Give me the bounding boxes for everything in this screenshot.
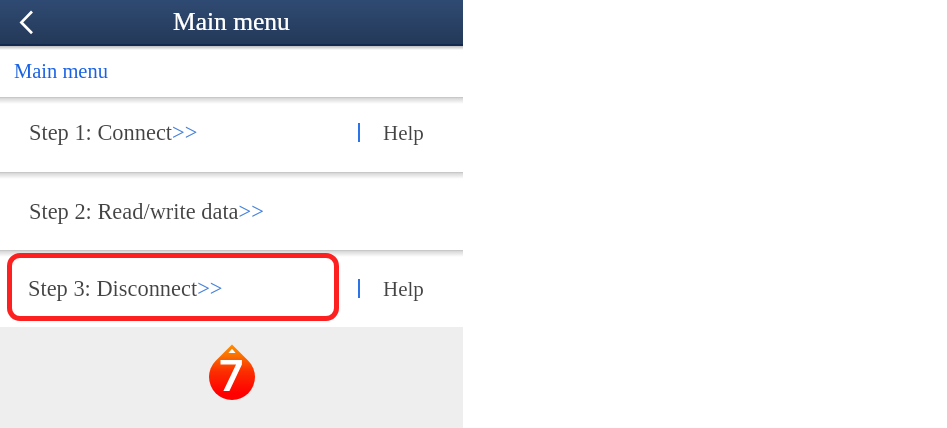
staticText: Help bbox=[383, 277, 424, 300]
button[interactable]: Help bbox=[383, 121, 424, 144]
staticText: Main menu bbox=[14, 60, 108, 83]
button[interactable]: Main menu bbox=[14, 60, 108, 83]
staticText: Main menu bbox=[173, 7, 290, 35]
staticText: Step 2: Read/write data>> bbox=[29, 199, 264, 224]
button[interactable]: Step 2: Read/write data>> bbox=[0, 173, 339, 250]
button[interactable]: Help bbox=[383, 277, 424, 300]
staticText: Step 1: Connect>> bbox=[29, 120, 198, 145]
button[interactable]: Back bbox=[0, 0, 46, 46]
staticText: Step 3: Disconnect>> bbox=[28, 276, 223, 301]
staticText: Help bbox=[383, 121, 424, 144]
button[interactable]: Step 1: Connect>> bbox=[0, 98, 339, 172]
button[interactable]: Step 3: Disconnect>> bbox=[7, 253, 339, 321]
